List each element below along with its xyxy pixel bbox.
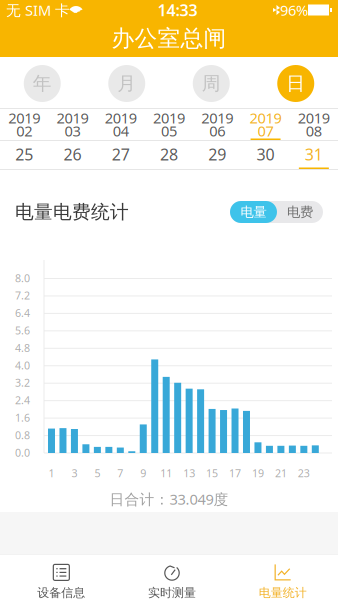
button[interactable]: 25 <box>0 141 48 169</box>
staticText: 28 <box>160 144 178 165</box>
button[interactable]: 2019 <box>97 109 145 140</box>
button[interactable]: 30 <box>241 141 290 169</box>
button[interactable]: 2019 <box>0 109 48 140</box>
staticText: 0.0 <box>15 445 30 460</box>
staticText: 08 <box>306 121 322 140</box>
staticText: 设备信息 <box>37 585 85 600</box>
button[interactable]: 27 <box>97 141 145 169</box>
staticText: 06 <box>209 121 225 140</box>
staticText: 31 <box>305 144 323 165</box>
staticText: 8.0 <box>15 271 30 285</box>
staticText: 96% <box>280 0 308 20</box>
staticText: 电量统计 <box>259 585 307 600</box>
staticText: 2019 <box>105 108 137 127</box>
staticText: 14:33 <box>157 0 197 21</box>
staticText: 7 <box>117 466 123 480</box>
staticText: 3 <box>71 466 77 480</box>
staticText: 23 <box>298 466 310 480</box>
button[interactable]: 年 <box>0 57 84 108</box>
staticText: 电量电费统计 <box>15 200 129 223</box>
button[interactable]: 日 <box>253 57 338 108</box>
staticText: 周 <box>202 72 221 95</box>
staticText: 11 <box>160 466 172 480</box>
button[interactable]: 2019 <box>241 109 290 140</box>
staticText: 26 <box>63 144 81 165</box>
staticText: 7.2 <box>15 288 30 303</box>
staticText: 2019 <box>201 108 233 127</box>
button[interactable]: 29 <box>193 141 241 169</box>
button[interactable]: 月 <box>84 57 169 108</box>
staticText: 0.8 <box>15 428 30 442</box>
staticText: 年 <box>33 72 52 95</box>
button[interactable]: 28 <box>145 141 193 169</box>
staticText: 3.2 <box>15 376 30 390</box>
staticText: 1.6 <box>15 410 30 425</box>
button[interactable]: 2019 <box>145 109 193 140</box>
staticText: 19 <box>252 466 264 480</box>
staticText: 2019 <box>56 108 88 127</box>
button[interactable]: 电量统计 <box>227 555 338 600</box>
staticText: 17 <box>229 466 241 480</box>
staticText: 21 <box>275 466 287 480</box>
staticText: 4.8 <box>15 341 30 355</box>
staticText: 日 <box>286 72 305 95</box>
staticText: 02 <box>16 121 32 140</box>
staticText: 5.6 <box>15 323 30 337</box>
button[interactable]: 电量 <box>230 201 277 223</box>
staticText: 电费 <box>287 204 313 220</box>
staticText: 15 <box>206 466 218 480</box>
button[interactable]: 31 <box>290 141 338 169</box>
staticText: 2019 <box>153 108 185 127</box>
staticText: 03 <box>64 121 80 140</box>
button[interactable]: 设备信息 <box>6 555 117 600</box>
staticText: 6.4 <box>15 306 30 320</box>
staticText: 29 <box>208 144 226 165</box>
staticText: 实时测量 <box>148 585 196 600</box>
button[interactable]: 26 <box>48 141 97 169</box>
button[interactable]: 实时测量 <box>117 555 227 600</box>
staticText: 9 <box>140 466 146 480</box>
button[interactable]: 2019 <box>290 109 338 140</box>
button[interactable]: 周 <box>169 57 253 108</box>
staticText: 25 <box>15 144 33 165</box>
staticText: 月 <box>117 72 136 95</box>
staticText: 05 <box>161 121 177 140</box>
staticText: 27 <box>112 144 130 165</box>
staticText: 2019 <box>8 108 40 127</box>
staticText: 13 <box>183 466 195 480</box>
staticText: 办公室总闸 <box>111 25 226 52</box>
staticText: 日合计：33.049度 <box>109 489 228 509</box>
button[interactable]: 2019 <box>48 109 97 140</box>
staticText: 电量 <box>240 204 266 220</box>
staticText: 2.4 <box>15 393 30 407</box>
staticText: 2019 <box>298 108 330 127</box>
staticText: 5 <box>94 466 100 480</box>
button[interactable]: 2019 <box>193 109 241 140</box>
staticText: 04 <box>113 121 129 140</box>
staticText: 无 SIM 卡 <box>6 0 70 20</box>
staticText: 4.0 <box>15 358 30 372</box>
staticText: 2019 <box>250 108 282 127</box>
button[interactable]: 电费 <box>277 201 323 223</box>
staticText: 30 <box>257 144 275 165</box>
staticText: 07 <box>258 121 274 140</box>
staticText: 1 <box>48 466 54 480</box>
